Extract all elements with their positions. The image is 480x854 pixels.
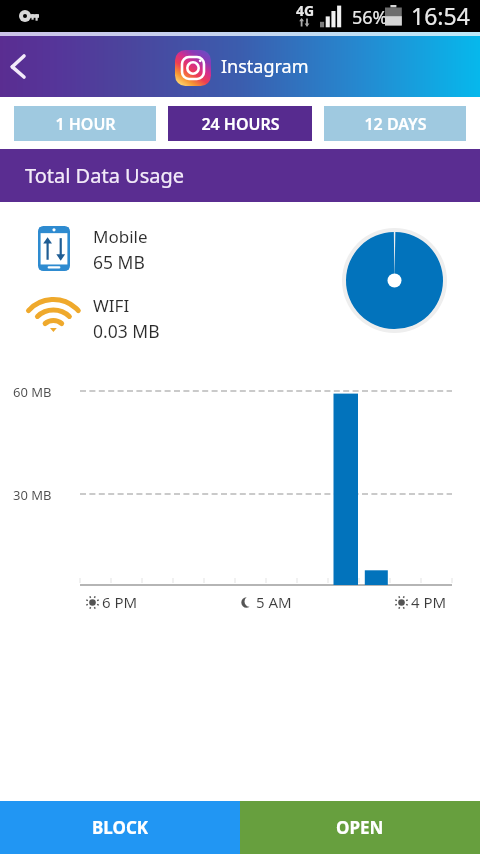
staticText: Mobile xyxy=(93,225,148,248)
staticText: 1 HOUR xyxy=(55,113,116,135)
staticText: Instagram xyxy=(221,54,309,79)
staticText: 0.03 MB xyxy=(93,319,160,343)
button[interactable]: 12 DAYS xyxy=(324,106,466,141)
staticText: 4G xyxy=(296,1,315,20)
staticText: BLOCK xyxy=(92,816,149,839)
staticText: Total Data Usage xyxy=(25,162,185,189)
button[interactable]: 24 HOURS xyxy=(168,106,312,141)
staticText: 4 PM xyxy=(411,592,447,612)
staticText: 56% xyxy=(352,5,388,30)
staticText: 16:54 xyxy=(411,0,470,31)
staticText: WIFI xyxy=(93,294,130,317)
button[interactable]: 1 HOUR xyxy=(14,106,156,141)
staticText: 5 AM xyxy=(256,592,292,612)
staticText: 60 MB xyxy=(13,383,52,401)
staticText: 30 MB xyxy=(13,486,52,504)
staticText: 12 DAYS xyxy=(364,113,427,135)
button[interactable]: Back xyxy=(0,41,46,87)
staticText: 6 PM xyxy=(102,592,138,612)
staticText: 65 MB xyxy=(93,250,145,274)
staticText: OPEN xyxy=(336,816,384,839)
staticText: 24 HOURS xyxy=(201,113,280,135)
button[interactable]: BLOCK xyxy=(0,801,240,854)
button[interactable]: OPEN xyxy=(240,801,480,854)
